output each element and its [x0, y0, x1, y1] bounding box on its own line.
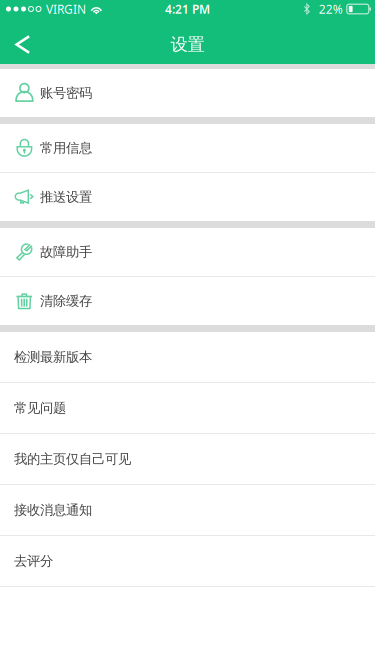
staticText: 检测最新版本	[14, 349, 92, 365]
staticText: 推送设置	[40, 189, 92, 205]
button[interactable]: 去评分	[0, 536, 375, 586]
staticText: 常见问题	[14, 400, 66, 416]
staticText: 常用信息	[40, 140, 92, 156]
button[interactable]: 故障助手	[0, 228, 375, 276]
staticText: 账号密码	[40, 85, 92, 101]
staticText: 22%	[319, 1, 343, 17]
staticText: 设置	[170, 34, 204, 55]
button[interactable]: 检测最新版本	[0, 332, 375, 382]
staticText: 4:21 PM	[165, 1, 210, 17]
button[interactable]: 接收消息通知	[0, 485, 375, 535]
staticText: VIRGIN	[46, 1, 86, 17]
staticText: 清除缓存	[40, 293, 92, 309]
button[interactable]: 常用信息	[0, 124, 375, 172]
button[interactable]: 清除缓存	[0, 277, 375, 325]
staticText: 去评分	[14, 553, 53, 569]
staticText: 故障助手	[40, 244, 92, 260]
staticText: 接收消息通知	[14, 502, 92, 518]
button[interactable]: Back	[0, 20, 44, 64]
button[interactable]: 我的主页仅自己可见	[0, 434, 375, 484]
button[interactable]: 账号密码	[0, 69, 375, 117]
staticText: 我的主页仅自己可见	[14, 451, 131, 467]
button[interactable]: 推送设置	[0, 173, 375, 221]
button[interactable]: 常见问题	[0, 383, 375, 433]
